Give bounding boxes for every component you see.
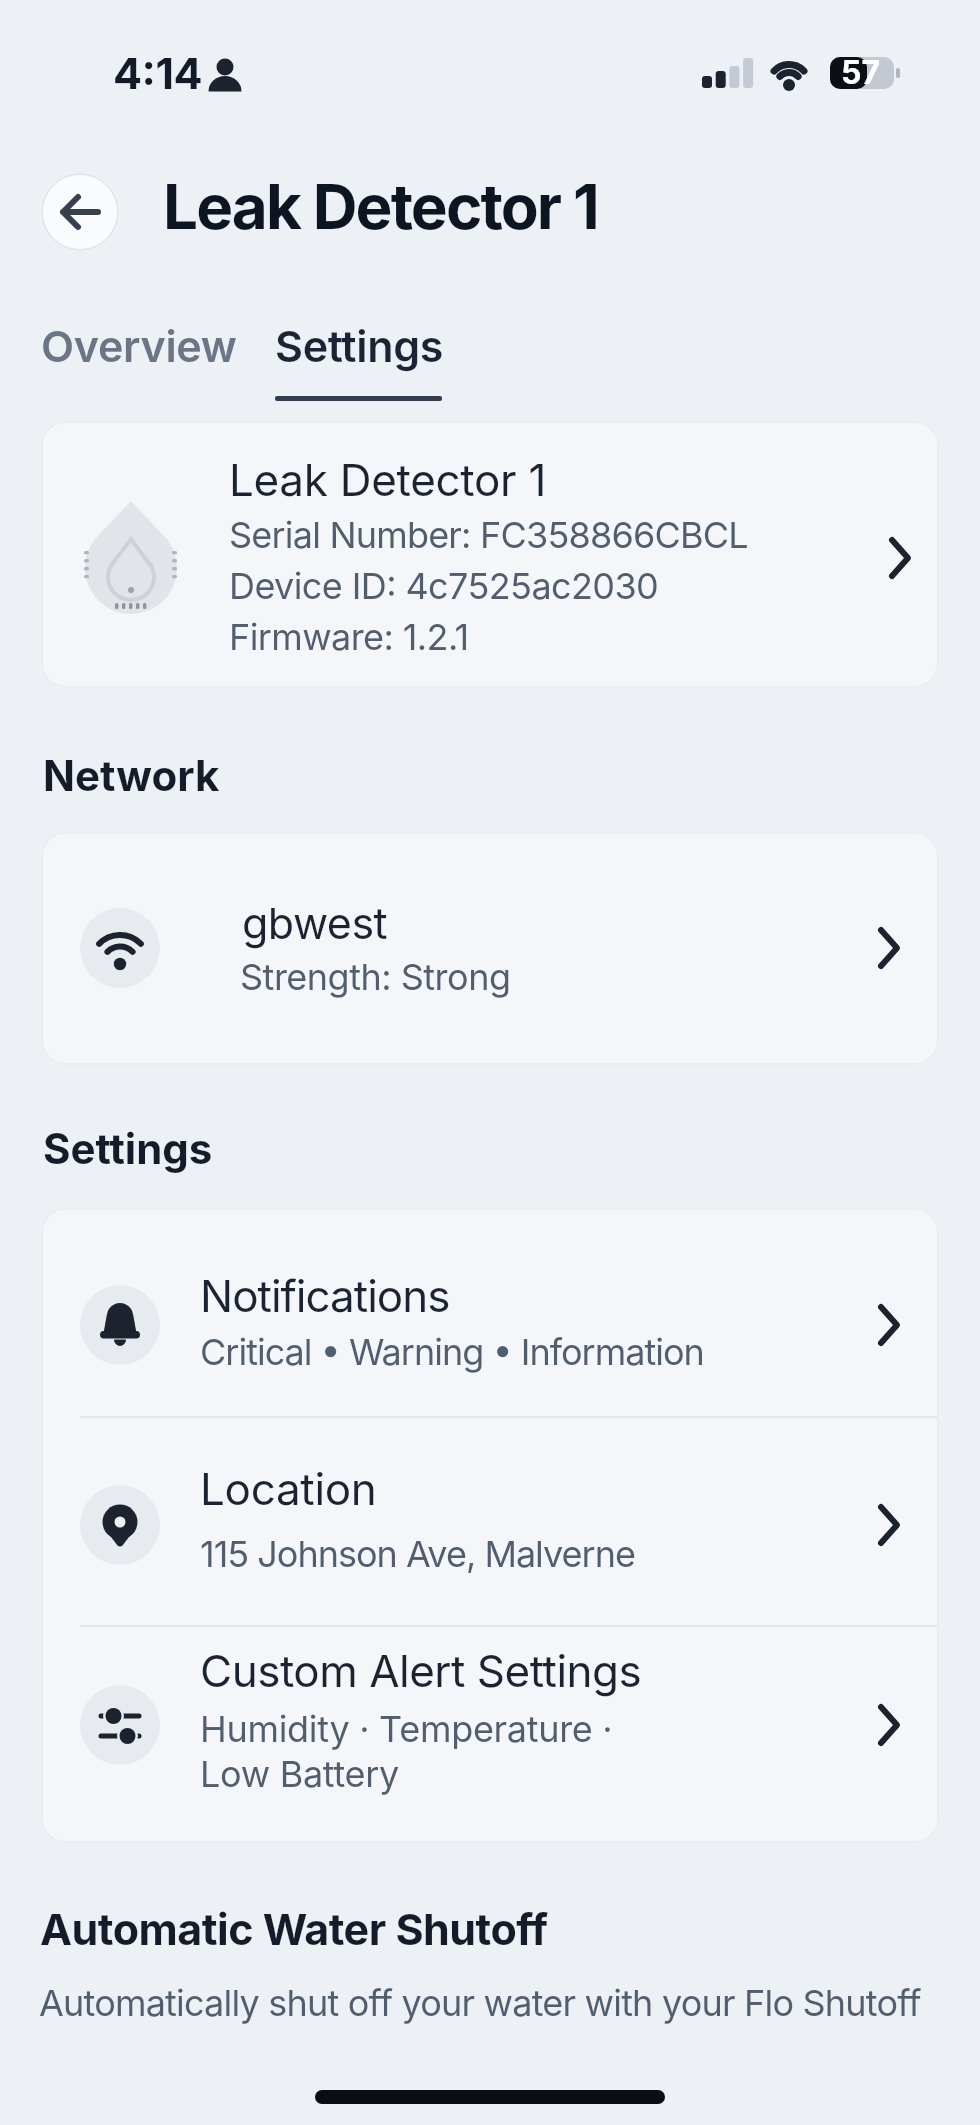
staticText: Automatic Water Shutoff <box>40 1903 548 1955</box>
button[interactable]: Settings <box>275 312 485 404</box>
staticText: 115 Johnson Ave, Malverne <box>200 1532 635 1576</box>
staticText: Overview <box>41 320 237 372</box>
button[interactable]: gbwest <box>41 832 939 1065</box>
staticText: Leak Detector 1 <box>229 453 547 506</box>
staticText: Notifications <box>200 1269 450 1322</box>
staticText: Location <box>200 1462 377 1515</box>
staticText: Strength: Strong <box>240 955 511 999</box>
staticText: 4:14 <box>113 47 203 99</box>
button[interactable]: Notifications <box>41 1208 939 1417</box>
staticText: Network <box>43 750 220 801</box>
staticText: Humidity · Temperature · <box>200 1707 613 1751</box>
staticText: gbwest <box>242 897 388 949</box>
staticText: Leak Detector 1 <box>163 169 598 244</box>
button[interactable]: Custom Alert Settings <box>41 1626 939 1843</box>
button[interactable]: Leak Detector 1 <box>41 421 939 688</box>
staticText: Firmware: 1.2.1 <box>229 615 469 659</box>
staticText: Serial Number: FC358866CBCL <box>229 513 748 557</box>
staticText: Device ID: 4c7525ac2030 <box>229 564 659 608</box>
staticText: Automatically shut off your water with y… <box>39 1981 921 2025</box>
button[interactable] <box>41 173 119 251</box>
staticText: Low Battery <box>200 1752 400 1796</box>
staticText: Settings <box>275 320 444 372</box>
staticText: Custom Alert Settings <box>200 1644 642 1697</box>
staticText: 57 <box>841 53 881 92</box>
button[interactable]: Overview <box>41 312 271 384</box>
button[interactable]: Location <box>41 1417 939 1626</box>
staticText: Settings <box>43 1123 213 1174</box>
staticText: Critical • Warning • Information <box>200 1330 704 1374</box>
